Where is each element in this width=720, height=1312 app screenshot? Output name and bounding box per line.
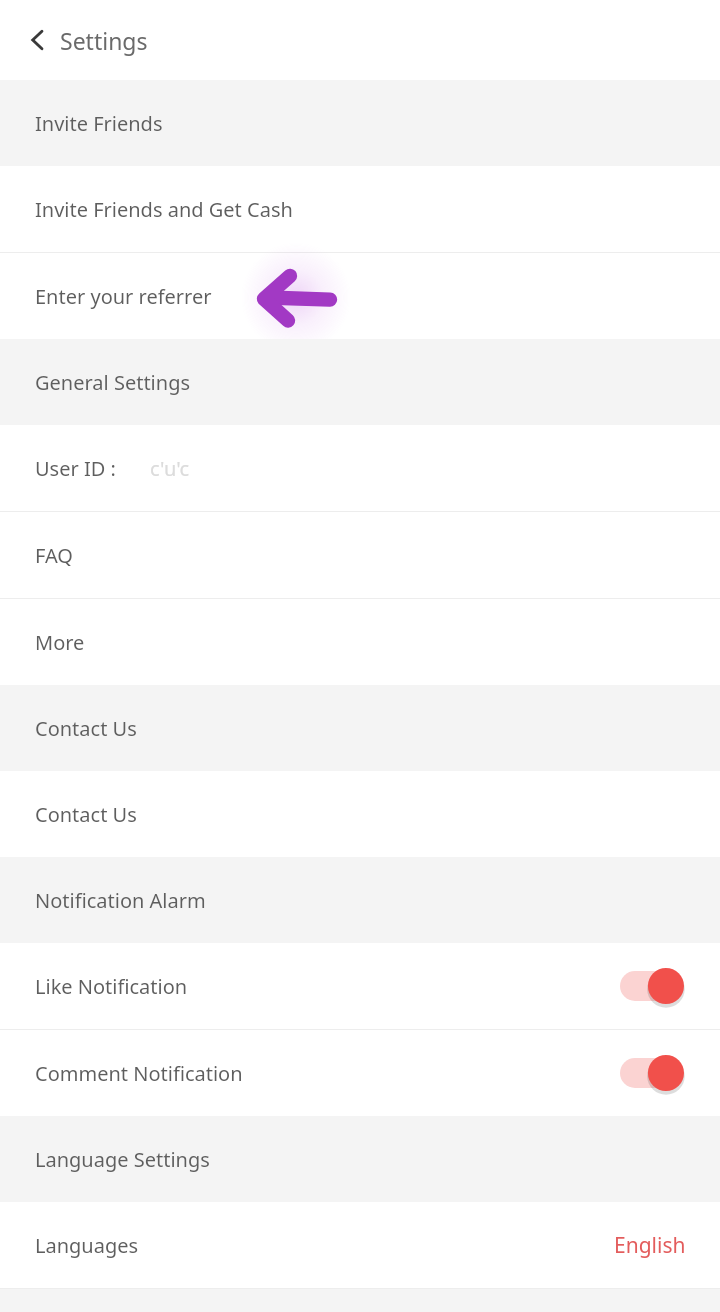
staticText: Enter your referrer [35,283,212,310]
button[interactable]: Comment Notification [0,1030,720,1116]
staticText: Contact Us [35,715,137,742]
button[interactable]: User ID : [0,425,720,511]
staticText: Contact Us [35,801,137,828]
staticText: Invite Friends and Get Cash [35,196,293,223]
button[interactable]: FAQ [0,512,720,598]
button[interactable]: Languages [0,1202,720,1288]
button[interactable]: More [0,599,720,685]
button[interactable]: Like Notification [0,943,720,1029]
staticText: Languages [35,1232,139,1259]
button[interactable]: Like Notification toggle [620,964,686,1008]
staticText: User ID : [35,455,116,482]
staticText: General Settings [35,369,191,396]
staticText: Settings [60,25,148,56]
staticText: Language Settings [35,1146,210,1173]
staticText: More [35,629,85,656]
staticText: Comment Notification [35,1060,243,1087]
button[interactable]: Back [18,20,58,60]
staticText: FAQ [35,542,73,569]
button[interactable]: Enter your referrer [0,253,720,339]
staticText: Notification Alarm [35,887,206,914]
staticText: c'u'c [150,455,190,482]
staticText: English [614,1231,686,1260]
button[interactable]: Invite Friends and Get Cash [0,166,720,252]
button[interactable]: Contact Us [0,771,720,857]
staticText: Like Notification [35,973,188,1000]
button[interactable]: Comment Notification toggle [620,1051,686,1095]
staticText: Invite Friends [35,110,163,137]
